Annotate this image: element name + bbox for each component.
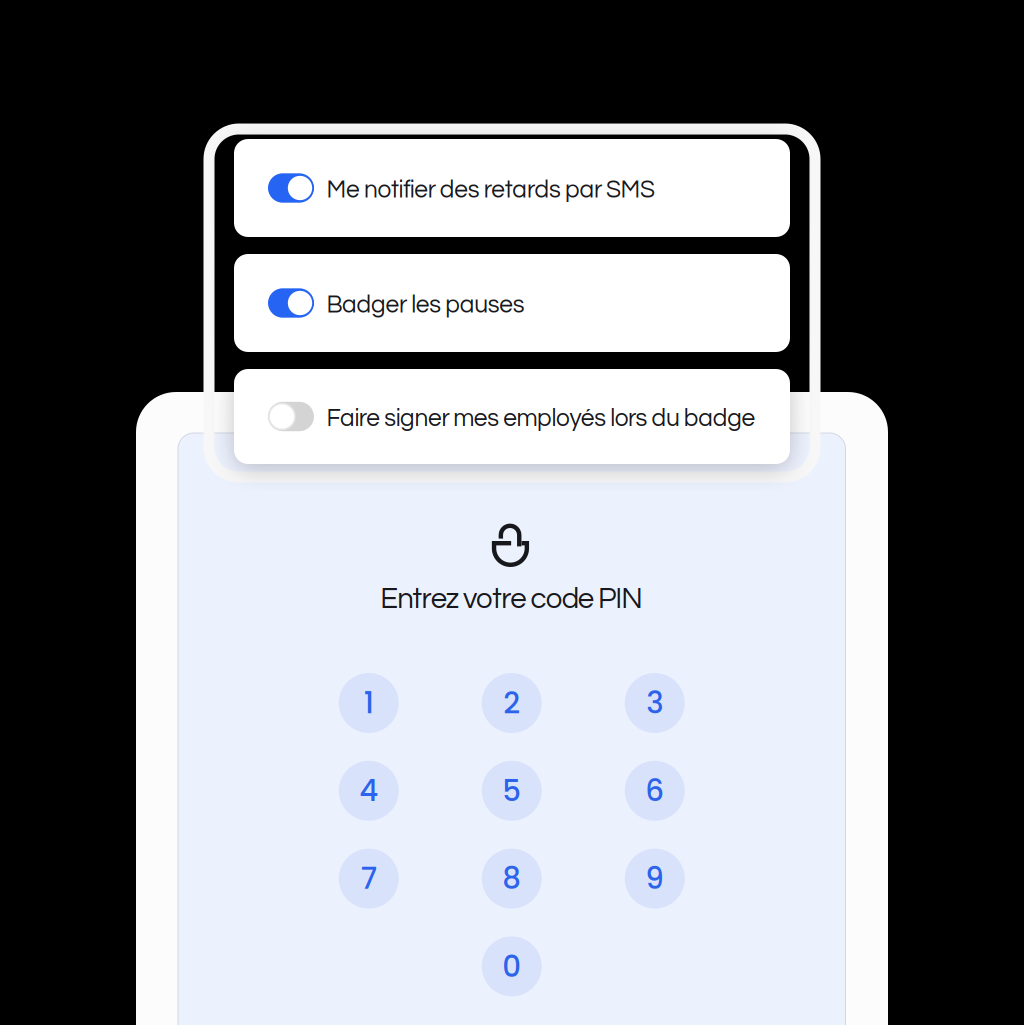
staticText: 2: [503, 682, 520, 724]
staticText: 9: [645, 858, 664, 899]
staticText: 1: [364, 682, 374, 724]
staticText: Entrez votre code PIN: [380, 584, 643, 614]
staticText: Badger les pauses: [326, 292, 525, 317]
button[interactable]: 5: [482, 761, 542, 821]
button[interactable]: 2: [482, 673, 542, 733]
staticText: 0: [502, 946, 521, 987]
button[interactable]: Faire signer mes employés lors du badge: [234, 369, 790, 464]
staticText: 3: [646, 682, 663, 724]
staticText: Faire signer mes employés lors du badge: [326, 406, 756, 431]
staticText: 8: [502, 858, 521, 899]
staticText: 5: [502, 770, 521, 811]
button[interactable]: 7: [339, 849, 399, 909]
staticText: 6: [645, 770, 664, 811]
button[interactable]: Me notifier des retards par SMS: [234, 139, 790, 237]
button[interactable]: 8: [482, 849, 542, 909]
staticText: 4: [359, 770, 378, 811]
button[interactable]: 3: [625, 673, 685, 733]
staticText: 7: [361, 858, 377, 899]
staticText: Me notifier des retards par SMS: [326, 177, 655, 202]
button[interactable]: 6: [625, 761, 685, 821]
button[interactable]: 4: [339, 761, 399, 821]
button[interactable]: 1: [339, 673, 399, 733]
button[interactable]: 0: [482, 936, 542, 996]
button[interactable]: 9: [625, 849, 685, 909]
button[interactable]: Badger les pauses: [234, 254, 790, 352]
